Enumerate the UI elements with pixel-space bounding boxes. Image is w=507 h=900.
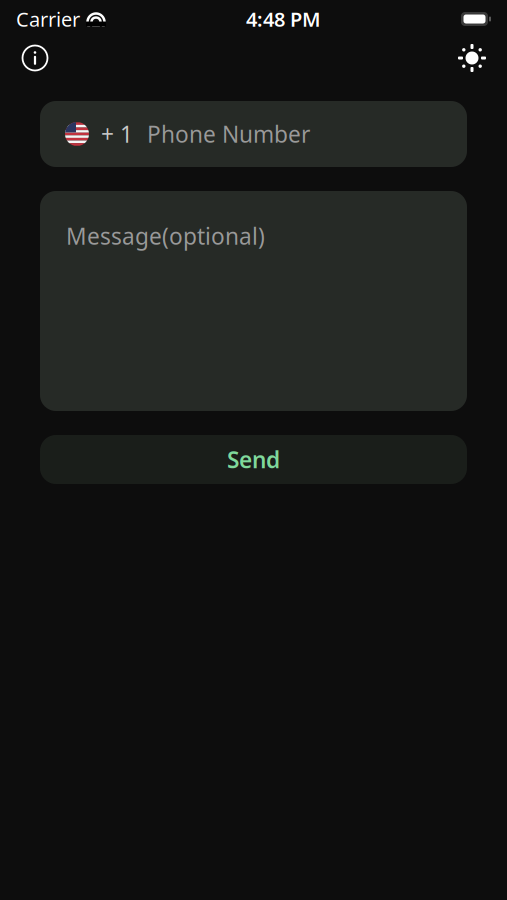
button[interactable]: + 1 bbox=[40, 101, 467, 167]
button[interactable]: Message(optional) bbox=[40, 191, 467, 411]
staticText: 4:48 PM bbox=[246, 6, 321, 32]
staticText: + 1 bbox=[101, 119, 133, 149]
button[interactable]: Send bbox=[40, 435, 467, 484]
staticText: Send bbox=[227, 444, 280, 474]
staticText: Carrier bbox=[16, 6, 80, 32]
button[interactable]: Brightness bbox=[450, 36, 494, 80]
button[interactable]: Information bbox=[13, 36, 57, 80]
staticText: Phone Number bbox=[147, 119, 310, 149]
staticText: Message(optional) bbox=[66, 221, 265, 251]
